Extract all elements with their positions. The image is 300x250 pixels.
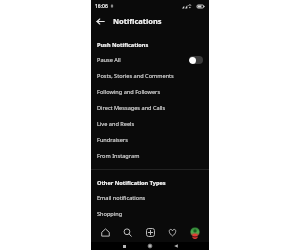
button[interactable]: Direct Messages and Calls: [91, 100, 209, 116]
button[interactable]: Profile: [185, 222, 204, 242]
button[interactable]: Home: [137, 242, 163, 250]
button[interactable]: Email notifications: [91, 190, 209, 206]
button[interactable]: Recents: [111, 242, 137, 250]
staticText: Posts, Stories and Comments: [97, 72, 174, 80]
button[interactable]: Live and Reels: [91, 116, 209, 132]
staticText: Other Notification Types: [97, 179, 166, 187]
button[interactable]: Activity: [163, 222, 182, 242]
button[interactable]: Following and Followers: [91, 84, 209, 100]
button[interactable]: Back: [163, 242, 189, 250]
staticText: Following and Followers: [97, 88, 161, 96]
staticText: Shopping: [97, 210, 123, 218]
staticText: Live and Reels: [97, 120, 135, 128]
button[interactable]: Home: [96, 222, 115, 242]
staticText: From Instagram: [97, 152, 140, 160]
button[interactable]: Pause All: [91, 52, 209, 68]
staticText: Notifications: [113, 16, 162, 26]
button[interactable]: From Instagram: [91, 148, 209, 164]
staticText: Direct Messages and Calls: [97, 104, 166, 112]
button[interactable]: Fundraisers: [91, 132, 209, 148]
button[interactable]: Pause All toggle: [189, 56, 203, 64]
button[interactable]: Posts, Stories and Comments: [91, 68, 209, 84]
button[interactable]: Search: [118, 222, 137, 242]
staticText: Pause All: [97, 56, 121, 64]
staticText: Email notifications: [97, 194, 146, 202]
staticText: Fundraisers: [97, 136, 128, 144]
button[interactable]: Shopping: [91, 206, 209, 222]
button[interactable]: Back: [91, 12, 109, 30]
staticText: Push Notifications: [97, 41, 149, 49]
staticText: 16:06: [95, 3, 108, 10]
button[interactable]: Create: [141, 222, 160, 242]
